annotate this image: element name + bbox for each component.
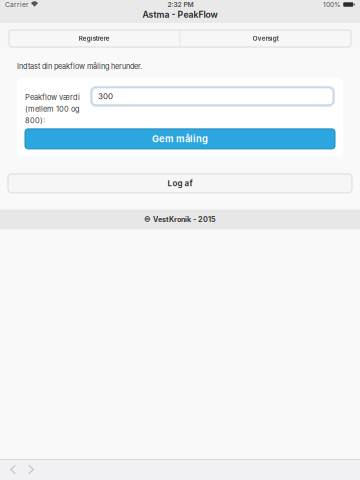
staticText: 2:32 PM: [167, 0, 193, 9]
staticText: Carrier: [5, 0, 29, 9]
staticText: Log af: [167, 178, 192, 188]
button[interactable]: Registrere: [9, 30, 179, 47]
staticText: Peakflow værdi: [25, 93, 80, 102]
staticText: 800):: [25, 116, 45, 125]
button[interactable]: Back: [4, 461, 22, 478]
button[interactable]: Forward: [22, 461, 40, 478]
staticText: Registrere: [79, 35, 110, 42]
button[interactable]: Oversigt: [180, 30, 351, 47]
staticText: Indtast din peakflow måling herunder.: [17, 62, 142, 71]
staticText: Gem måling: [152, 133, 208, 144]
staticText: Astma - PeakFlow: [142, 9, 217, 20]
staticText: © VestKronik - 2015: [144, 215, 216, 224]
staticText: (mellem 100 og: [25, 104, 80, 113]
button[interactable]: Log af: [8, 174, 352, 193]
staticText: Oversigt: [253, 35, 279, 42]
button[interactable]: Gem måling: [25, 129, 335, 149]
staticText: 100%: [323, 0, 341, 9]
staticText: 300: [98, 91, 113, 101]
